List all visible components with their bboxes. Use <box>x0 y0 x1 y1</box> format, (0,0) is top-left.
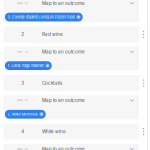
button[interactable]: MAP TO <box>3 95 139 106</box>
button[interactable]: 2 <box>3 26 139 42</box>
staticText: Red wine <box>42 32 63 37</box>
button[interactable]: MAP TO <box>3 144 139 150</box>
staticText: 2. Woke Millennial <box>7 112 37 116</box>
button[interactable]: More options <box>139 78 147 87</box>
staticText: White wine <box>42 129 66 134</box>
button[interactable]: More options <box>139 30 147 39</box>
staticText: MAP TO <box>17 2 28 5</box>
staticText: Map to an outcome <box>42 0 85 6</box>
staticText: MAP TO <box>17 50 28 53</box>
staticText: MAP TO <box>17 99 28 102</box>
staticText: 3. College Student Living on Frozen Food <box>7 15 74 19</box>
button[interactable]: 4 <box>3 124 139 140</box>
staticText: 3 <box>21 80 24 86</box>
button[interactable]: MAP TO <box>3 47 139 57</box>
staticText: MAP TO <box>17 147 28 150</box>
staticText: 1. Local Yoga Teacher <box>7 63 43 68</box>
button[interactable]: More options <box>139 127 147 136</box>
staticText: Map to an outcome <box>42 98 85 103</box>
button[interactable]: 1. Local Yoga Teacher <box>5 61 52 70</box>
staticText: Map to an outcome <box>42 146 85 150</box>
button[interactable]: 3. College Student Living on Frozen Food <box>5 13 83 21</box>
staticText: 2 <box>21 32 24 37</box>
staticText: Map to an outcome <box>42 49 85 55</box>
button[interactable]: 3 <box>3 75 139 91</box>
staticText: Cocktails <box>42 80 62 86</box>
staticText: 4 <box>21 129 24 134</box>
button[interactable]: 2. Woke Millennial <box>5 110 46 119</box>
button[interactable]: MAP TO <box>3 0 139 8</box>
